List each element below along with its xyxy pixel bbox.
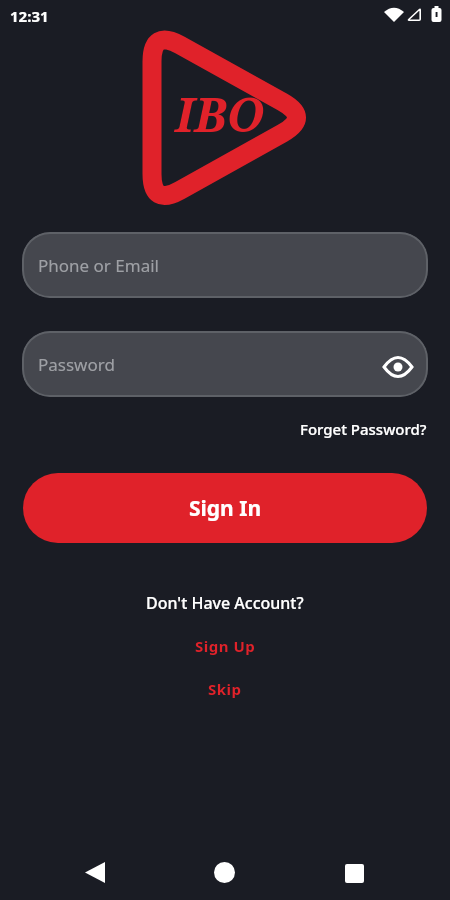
button[interactable] [345,864,364,883]
button[interactable] [214,862,235,883]
staticText: Password [38,353,115,376]
button[interactable]: Password [22,331,428,397]
button[interactable] [382,354,414,380]
staticText: Sign In [189,494,262,523]
button[interactable]: Forget Password? [300,419,427,439]
button[interactable]: Sign Up [195,636,256,656]
staticText: Don't Have Account? [146,592,304,614]
button[interactable]: Phone or Email [22,232,428,298]
button[interactable]: Sign In [23,473,427,543]
button[interactable]: Skip [208,679,242,699]
staticText: 12:31 [10,6,49,26]
button[interactable] [85,862,105,883]
staticText: Phone or Email [38,254,159,277]
staticText: IBO [175,81,265,146]
